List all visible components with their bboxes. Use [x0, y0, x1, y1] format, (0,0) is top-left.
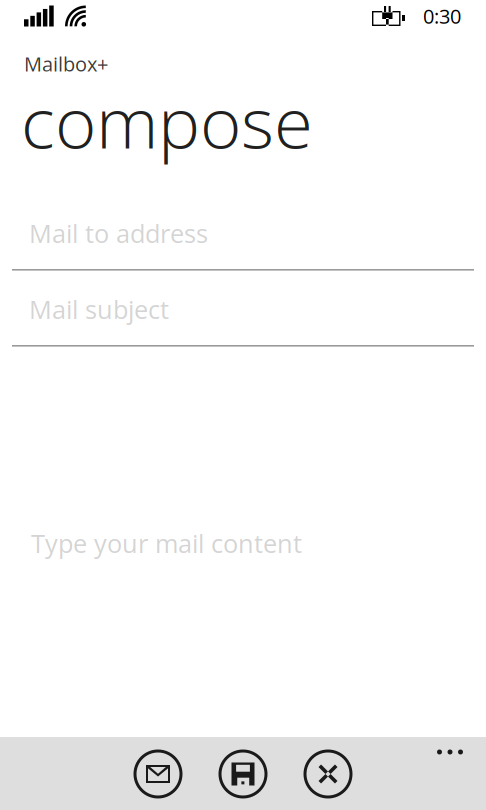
- staticText: Mail to address: [29, 216, 208, 250]
- staticText: Type your mail content: [31, 526, 302, 560]
- staticText: Mail subject: [29, 292, 169, 326]
- button[interactable]: Cancel: [296, 740, 360, 808]
- button[interactable]: Mail to address: [0, 0, 486, 810]
- staticText: 0:30: [423, 2, 461, 30]
- staticText: compose: [21, 73, 313, 169]
- staticText: Mailbox+: [24, 50, 108, 77]
- button[interactable]: More options: [424, 737, 476, 767]
- button[interactable]: Save: [211, 740, 275, 808]
- button[interactable]: Mail subject: [0, 0, 486, 810]
- button[interactable]: Send: [126, 740, 190, 808]
